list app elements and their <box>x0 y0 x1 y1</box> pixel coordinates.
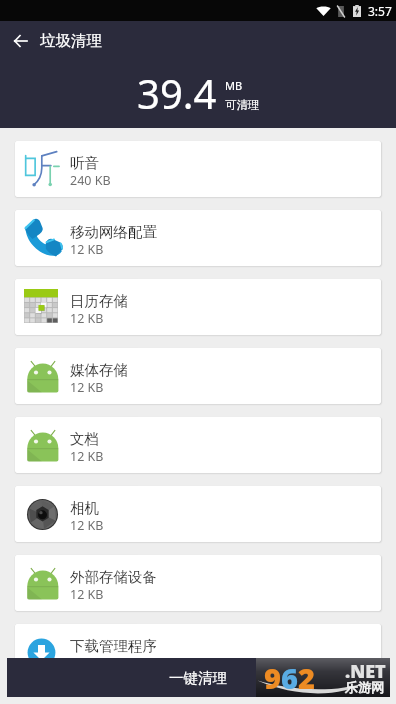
staticText: 媒体存储 <box>70 361 128 379</box>
staticText: 12 KB <box>70 310 104 327</box>
staticText: 移动网络配置 <box>70 223 157 241</box>
staticText: 一键清理 <box>169 669 227 687</box>
staticText: 3:57 <box>368 3 392 19</box>
button[interactable]: 下载管理程序 <box>15 624 381 680</box>
staticText: 12 KB <box>70 379 104 396</box>
staticText: 12 KB <box>70 241 104 258</box>
staticText: 12 KB <box>70 517 104 534</box>
button[interactable]: 相机 <box>15 486 381 542</box>
staticText: 文档 <box>70 430 99 448</box>
staticText: 12 KB <box>70 655 104 672</box>
staticText: 垃圾清理 <box>40 31 102 51</box>
staticText: 12 KB <box>70 586 104 603</box>
staticText: 外部存储设备 <box>70 568 157 586</box>
button[interactable]: 听音 <box>15 141 381 197</box>
staticText: 下载管理程序 <box>70 637 157 655</box>
staticText: 乐游网 <box>345 679 384 695</box>
button[interactable]: 移动网络配置 <box>15 210 381 266</box>
staticText: 9 <box>264 658 281 697</box>
staticText: 可清理 <box>225 98 260 112</box>
staticText: 2 <box>298 658 315 697</box>
button[interactable]: 日历存储 <box>15 279 381 335</box>
staticText: 39.4 <box>137 66 217 120</box>
staticText: 听音 <box>70 154 99 172</box>
staticText: 6 <box>281 658 298 697</box>
staticText: MB <box>225 78 243 93</box>
button[interactable]: 一键清理 <box>7 658 389 697</box>
button[interactable]: 外部存储设备 <box>15 555 381 611</box>
staticText: 240 KB <box>70 172 111 189</box>
staticText: 12 KB <box>70 448 104 465</box>
button[interactable]: 文档 <box>15 417 381 473</box>
staticText: 日历存储 <box>70 292 128 310</box>
staticText: 相机 <box>70 499 99 517</box>
staticText: .NET <box>345 659 386 684</box>
button[interactable]: Back <box>0 21 40 61</box>
button[interactable]: 媒体存储 <box>15 348 381 404</box>
